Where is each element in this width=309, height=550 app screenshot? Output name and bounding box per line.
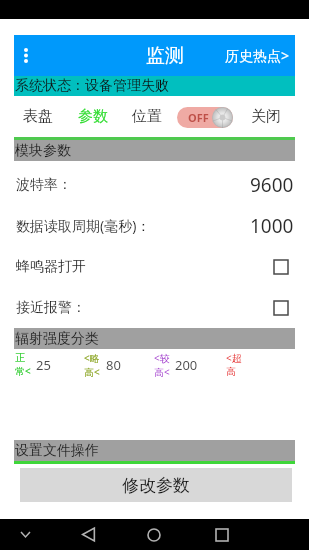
staticText: 修改参数 (122, 475, 190, 496)
button[interactable]: 历史热点> (225, 35, 295, 76)
staticText: 高< (84, 365, 100, 379)
staticText: 波特率： (16, 176, 72, 194)
button[interactable]: Hide keyboard (9, 519, 41, 550)
staticText: 高< (154, 365, 170, 379)
staticText: <略 (84, 351, 100, 365)
staticText: 辐射强度分类 (15, 330, 99, 348)
button[interactable]: 参数 (76, 96, 110, 137)
button[interactable]: Toggle off (177, 106, 233, 128)
staticText: 正 (15, 351, 25, 364)
staticText: 25 (36, 356, 51, 374)
button[interactable]: More options (14, 35, 38, 76)
staticText: 蜂鸣器打开 (16, 258, 86, 276)
staticText: 200 (175, 356, 198, 374)
staticText: 模块参数 (15, 142, 71, 160)
staticText: 系统状态：设备管理失败 (15, 77, 169, 95)
staticText: 历史热点> (225, 46, 290, 65)
button[interactable]: 波特率： (14, 164, 295, 205)
button[interactable]: Home (134, 519, 174, 550)
button[interactable]: Recent apps (202, 519, 242, 550)
staticText: 常< (15, 364, 31, 378)
button[interactable]: 关闭 (249, 96, 283, 137)
button[interactable]: 接近报警： (14, 287, 295, 328)
staticText: 80 (106, 356, 121, 374)
button[interactable]: 位置 (130, 96, 164, 137)
button[interactable]: Back (68, 519, 108, 550)
button[interactable]: 修改参数 (20, 468, 292, 502)
staticText: <超 (226, 351, 242, 365)
staticText: 位置 (132, 107, 162, 126)
button[interactable]: 表盘 (21, 96, 55, 137)
staticText: 设置文件操作 (15, 442, 99, 460)
staticText: 9600 (250, 172, 294, 198)
button[interactable]: 数据读取周期(毫秒)： (14, 205, 295, 246)
staticText: 表盘 (23, 107, 53, 126)
staticText: OFF (188, 110, 209, 125)
staticText: 高 (226, 365, 236, 378)
staticText: 监测 (146, 44, 184, 68)
button[interactable]: 蜂鸣器打开 (14, 246, 295, 287)
staticText: 接近报警： (16, 299, 86, 317)
staticText: 参数 (78, 107, 108, 126)
staticText: 关闭 (251, 107, 281, 126)
staticText: <较 (154, 351, 170, 365)
staticText: 数据读取周期(毫秒)： (16, 216, 151, 235)
staticText: 1000 (250, 213, 294, 239)
